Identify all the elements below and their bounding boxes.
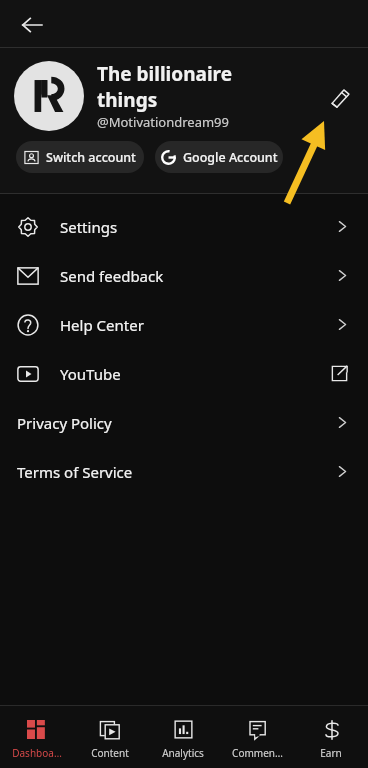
staticText: Terms of Service <box>17 462 133 482</box>
button[interactable]: Back <box>10 3 54 47</box>
staticText: Switch account <box>46 149 136 166</box>
button[interactable]: Send feedback <box>0 251 368 300</box>
staticText: @Motivationdream99 <box>97 113 229 131</box>
staticText: Help Center <box>60 315 144 335</box>
staticText: Commen… <box>232 746 283 760</box>
button[interactable] <box>14 61 84 131</box>
staticText: The billionaire things <box>97 61 277 112</box>
staticText: Privacy Policy <box>17 413 112 433</box>
button[interactable]: Privacy Policy <box>0 398 368 447</box>
staticText: Settings <box>60 217 118 237</box>
staticText: Analytics <box>162 746 204 760</box>
staticText: Content <box>91 746 129 760</box>
button[interactable]: Dashboa… <box>0 706 73 768</box>
button[interactable]: Edit channel <box>320 77 360 117</box>
button[interactable]: Analytics <box>146 706 220 768</box>
staticText: Send feedback <box>60 266 164 286</box>
button[interactable]: Content <box>73 706 146 768</box>
button[interactable]: Earn <box>294 706 368 768</box>
staticText: YouTube <box>60 364 121 384</box>
button[interactable]: Terms of Service <box>0 447 368 496</box>
button[interactable]: Settings <box>0 202 368 251</box>
button[interactable]: Switch account <box>16 141 144 173</box>
button[interactable]: YouTube <box>0 349 368 398</box>
button[interactable]: Help Center <box>0 300 368 349</box>
staticText: Dashboa… <box>12 746 62 760</box>
staticText: Google Account <box>183 149 278 166</box>
button[interactable]: Google Account <box>155 141 283 173</box>
button[interactable]: Commen… <box>220 706 294 768</box>
staticText: Earn <box>320 746 342 760</box>
